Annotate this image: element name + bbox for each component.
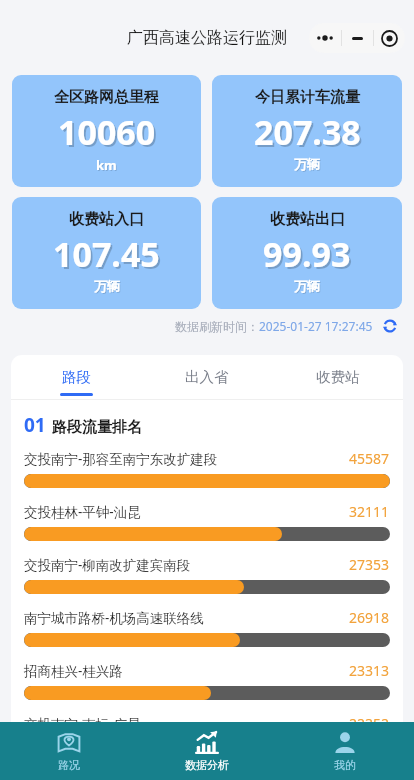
button[interactable]: 收费站出口 [212,197,402,309]
staticText: 广西高速公路运行监测 [127,28,287,48]
button[interactable]: 今日累计车流量 [212,75,402,187]
staticText: 我的 [334,758,356,772]
staticText: 万辆 [294,156,320,172]
staticText: 万辆 [295,157,321,173]
staticText: 招商桂兴-桂兴路 [24,662,349,680]
staticText: 10060 [58,109,156,155]
staticText: 27353 [349,555,390,574]
staticText: 26918 [349,608,390,627]
button[interactable]: 交投南宁-南坛-广昆 [11,714,403,767]
staticText: 交投南宁-柳南改扩建宾南段 [24,556,349,574]
button[interactable]: 交投桂林-平钟-汕昆 [11,502,403,555]
staticText: 万辆 [94,278,120,294]
staticText: 99.93 [263,231,351,277]
staticText: 万辆 [294,278,320,294]
staticText: 207.38 [254,109,361,155]
button[interactable]: Minimize [342,23,373,53]
button[interactable]: 出入省 [141,355,272,399]
staticText: 路段流量排名 [52,418,142,437]
staticText: 收费站入口 [69,210,144,229]
staticText: 32111 [349,502,390,521]
staticText: 交投桂林-平钟-汕昆 [24,503,349,521]
staticText: 交投南宁-那容至南宁东改扩建段 [24,450,349,468]
button[interactable]: 路况 [0,722,138,780]
staticText: 收费站出口 [270,210,345,229]
staticText: 207.38 [256,111,363,157]
staticText: 107.45 [53,231,160,277]
staticText: 10060 [60,111,158,157]
staticText: 数据刷新时间： [175,319,259,334]
button[interactable]: 路段 [11,355,141,399]
staticText: 107.45 [55,233,162,279]
staticText: 2025-01-27 17:27:45 [259,318,373,334]
staticText: 出入省 [185,368,229,386]
button[interactable]: More [309,23,341,53]
button[interactable]: Close [374,23,405,53]
staticText: 22352 [349,714,390,733]
staticText: 路段 [62,368,91,386]
staticText: 01 [24,412,46,438]
staticText: 今日累计车流量 [255,88,360,107]
button[interactable]: 交投南宁-那容至南宁东改扩建段 [11,449,403,502]
button[interactable]: 我的 [276,722,414,780]
staticText: 45587 [349,449,390,468]
staticText: 99.93 [265,233,353,279]
button[interactable]: Refresh [380,316,400,336]
staticText: km [97,157,118,175]
button[interactable]: 收费站 [272,355,403,399]
staticText: 南宁城市路桥-机场高速联络线 [24,609,349,627]
button[interactable]: 交投南宁-柳南改扩建宾南段 [11,555,403,608]
staticText: 23313 [349,661,390,680]
staticText: 全区路网总里程 [54,88,159,107]
staticText: 路况 [58,758,80,772]
staticText: 万辆 [295,279,321,295]
button[interactable]: 全区路网总里程 [12,75,201,187]
staticText: 交投南宁-南坛-广昆 [24,715,349,733]
staticText: 万辆 [95,279,121,295]
button[interactable]: 招商桂兴-桂兴路 [11,661,403,714]
button[interactable]: 收费站入口 [12,197,201,309]
staticText: km [96,156,117,174]
staticText: 收费站 [316,368,360,386]
staticText: 数据分析 [185,758,229,772]
button[interactable]: 南宁城市路桥-机场高速联络线 [11,608,403,661]
button[interactable]: 数据分析 [138,722,276,780]
